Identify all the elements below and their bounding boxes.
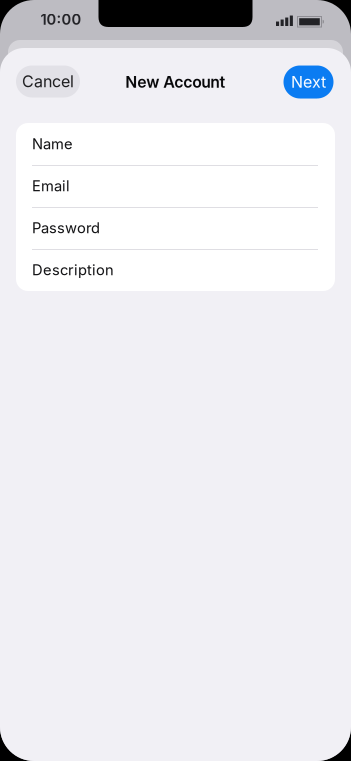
button[interactable]: Next [283, 65, 333, 98]
button[interactable]: Description [32, 249, 319, 291]
button[interactable]: Password [32, 207, 319, 249]
button[interactable]: Cancel [16, 65, 80, 97]
staticText: Email [32, 177, 70, 195]
staticText: Description [32, 261, 114, 279]
staticText: Next [291, 73, 326, 91]
button[interactable]: Name [32, 123, 319, 165]
staticText: New Account [125, 72, 225, 92]
staticText: Name [32, 135, 73, 153]
staticText: Cancel [22, 72, 74, 91]
staticText: 10:00 [40, 11, 81, 28]
button[interactable]: Email [32, 165, 319, 207]
staticText: Password [32, 219, 100, 237]
